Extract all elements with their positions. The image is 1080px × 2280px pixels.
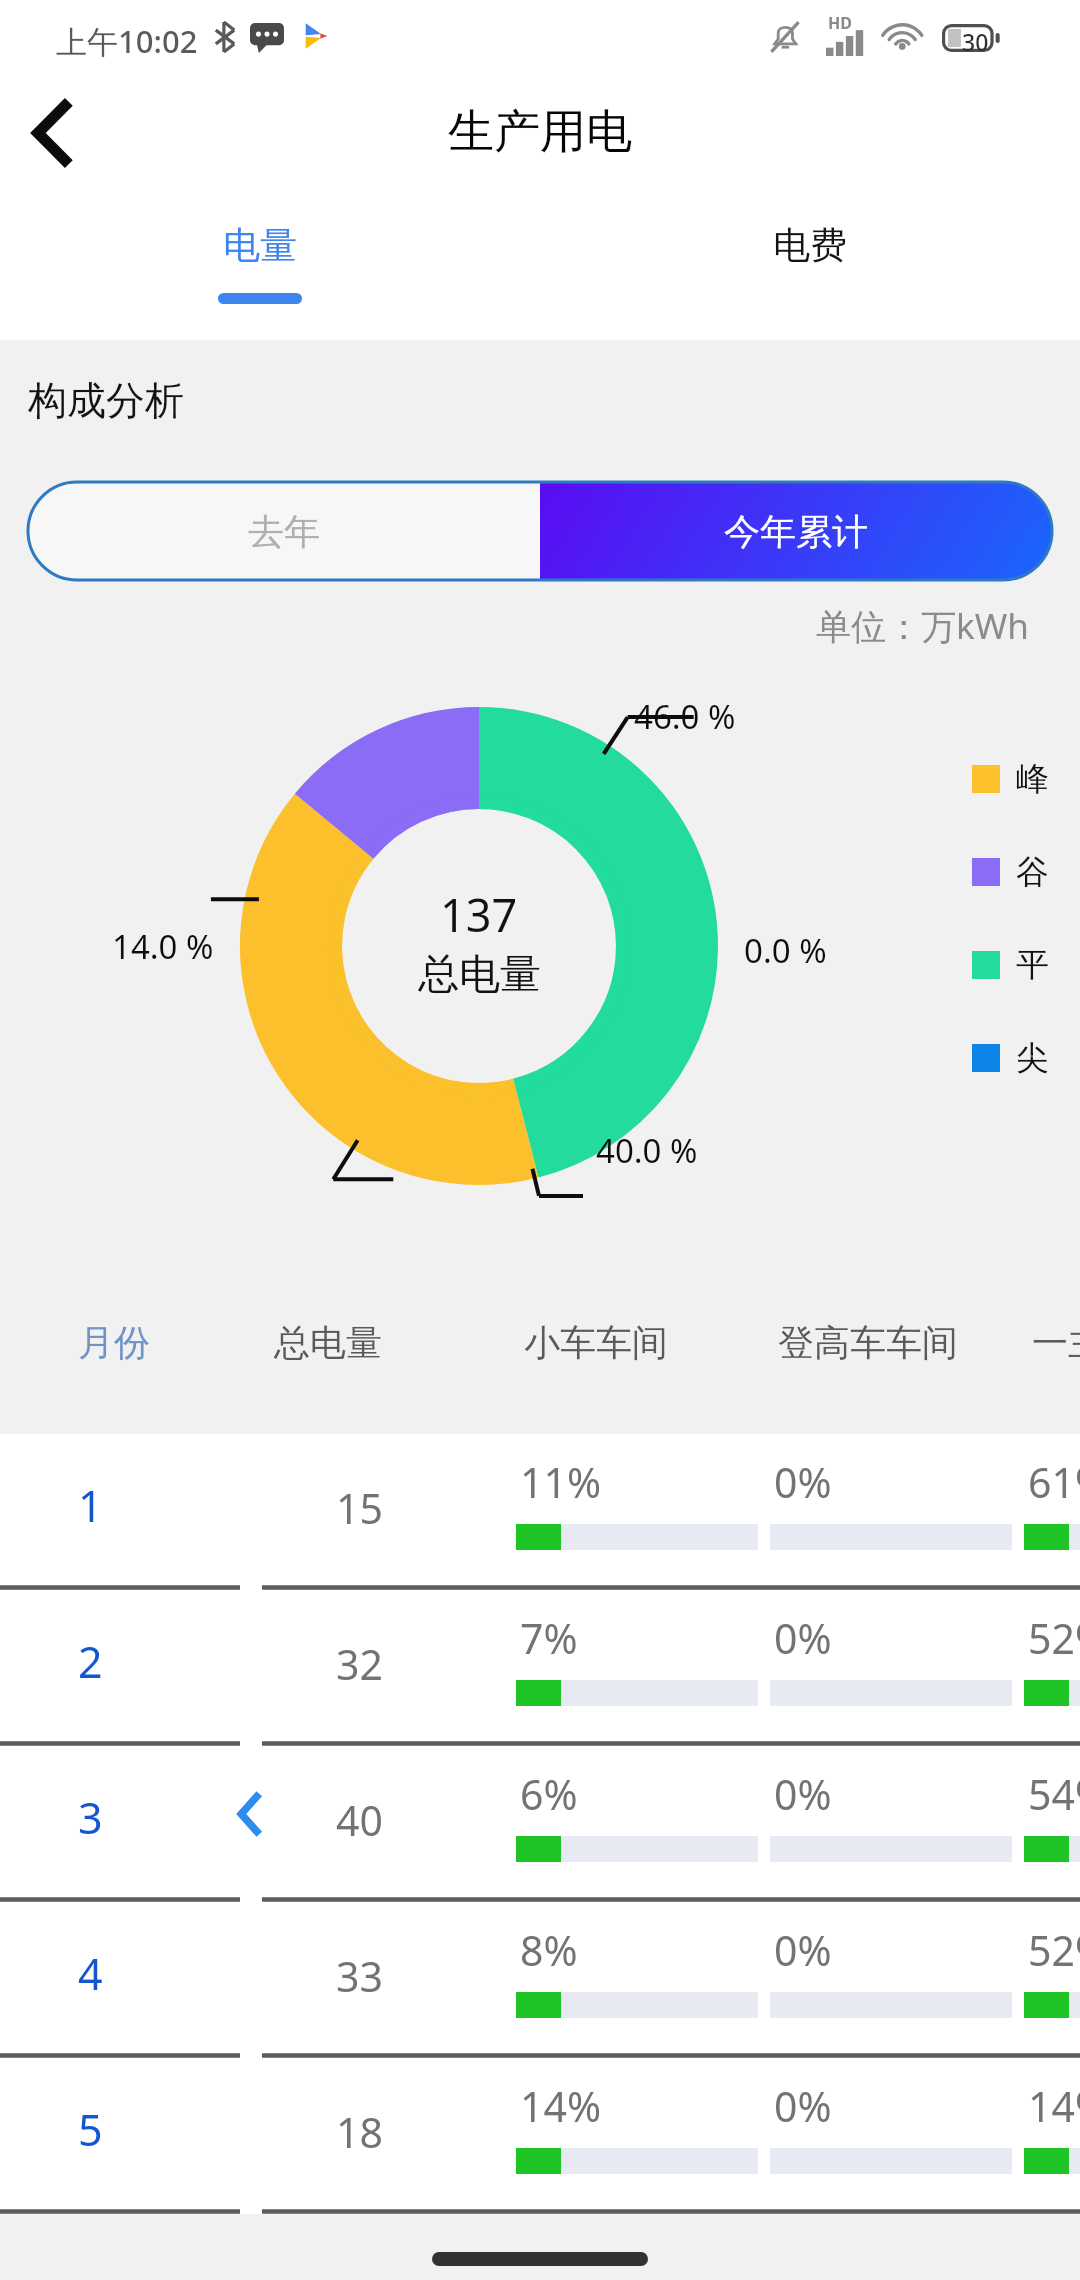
- staticText: 7%: [520, 1610, 578, 1666]
- button[interactable]: Back: [12, 92, 94, 174]
- staticText: 一主: [1032, 1320, 1080, 1365]
- staticText: 生产用电: [448, 103, 632, 161]
- staticText: 0%: [774, 1454, 832, 1510]
- staticText: 2: [78, 1632, 103, 1691]
- button[interactable]: 4: [0, 1902, 1080, 2058]
- staticText: 电费: [773, 222, 847, 269]
- staticText: 30: [962, 26, 989, 57]
- staticText: HD: [828, 12, 852, 34]
- staticText: 137: [440, 884, 518, 945]
- staticText: 登高车车间: [778, 1320, 958, 1365]
- staticText: 总电量: [274, 1320, 382, 1365]
- staticText: 4: [78, 1944, 103, 2003]
- staticText: 33: [336, 1948, 383, 2004]
- staticText: 1: [78, 1476, 103, 1535]
- button[interactable]: 5: [0, 2058, 1080, 2214]
- staticText: 去年: [248, 509, 320, 554]
- staticText: 0%: [774, 2078, 832, 2134]
- button[interactable]: 峰: [972, 758, 1049, 800]
- staticText: 15: [336, 1480, 383, 1536]
- button[interactable]: 平: [972, 944, 1049, 986]
- staticText: 今年累计: [724, 509, 868, 554]
- staticText: 14%: [1028, 2078, 1080, 2134]
- button[interactable]: 去年: [28, 482, 540, 580]
- staticText: 0.0 %: [744, 928, 827, 973]
- staticText: 14%: [520, 2078, 601, 2134]
- button[interactable]: 1: [0, 1434, 1080, 1590]
- staticText: 40: [336, 1792, 383, 1848]
- staticText: 40.0 %: [596, 1128, 698, 1173]
- staticText: 谷: [1016, 851, 1049, 893]
- staticText: 小车车间: [524, 1320, 668, 1365]
- staticText: 平: [1016, 944, 1049, 986]
- staticText: 14.0 %: [112, 924, 214, 969]
- staticText: 5: [78, 2100, 103, 2159]
- staticText: 月份: [78, 1320, 150, 1365]
- staticText: 上午10:02: [56, 20, 198, 62]
- staticText: 32: [336, 1636, 383, 1692]
- staticText: 6%: [520, 1766, 578, 1822]
- button[interactable]: 尖: [972, 1037, 1049, 1079]
- staticText: 单位：万kWh: [816, 602, 1029, 650]
- button[interactable]: 2: [0, 1590, 1080, 1746]
- button[interactable]: 谷: [972, 851, 1049, 893]
- staticText: 0%: [774, 1922, 832, 1978]
- staticText: 46.0 %: [634, 694, 736, 739]
- button[interactable]: 电费: [695, 188, 925, 340]
- staticText: 总电量: [418, 949, 541, 1001]
- staticText: 尖: [1016, 1037, 1049, 1079]
- staticText: 11%: [520, 1454, 601, 1510]
- staticText: 3: [78, 1788, 103, 1847]
- staticText: 18: [336, 2104, 383, 2160]
- button[interactable]: 今年累计: [540, 482, 1052, 580]
- button[interactable]: 电量: [145, 188, 375, 340]
- button[interactable]: 3: [0, 1746, 1080, 1902]
- staticText: 61%: [1028, 1454, 1080, 1510]
- staticText: 52%: [1028, 1610, 1080, 1666]
- button[interactable]: Expand month: [220, 1784, 280, 1844]
- staticText: 电量: [223, 222, 297, 269]
- staticText: 52%: [1028, 1922, 1080, 1978]
- staticText: 峰: [1016, 758, 1049, 800]
- staticText: 54%: [1028, 1766, 1080, 1822]
- staticText: 8%: [520, 1922, 578, 1978]
- staticText: 0%: [774, 1766, 832, 1822]
- staticText: 0%: [774, 1610, 832, 1666]
- staticText: 构成分析: [28, 376, 184, 425]
